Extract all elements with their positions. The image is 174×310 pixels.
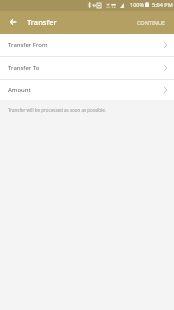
button[interactable]: Transfer From <box>0 34 174 56</box>
button[interactable]: Amount <box>0 80 174 100</box>
staticText: Amount <box>8 86 31 94</box>
staticText: Transfer To <box>8 64 40 72</box>
staticText: 100% <box>130 1 145 8</box>
staticText: Transfer will be processed as soon as po… <box>8 107 106 113</box>
button[interactable]: CONTINUE <box>129 14 174 31</box>
staticText: CONTINUE <box>137 19 166 26</box>
button[interactable]: Transfer To <box>0 57 174 79</box>
staticText: 5:04 PM <box>152 1 173 8</box>
staticText: Transfer <box>27 17 57 27</box>
button[interactable]: Back <box>4 14 21 31</box>
staticText: Transfer From <box>8 41 48 49</box>
